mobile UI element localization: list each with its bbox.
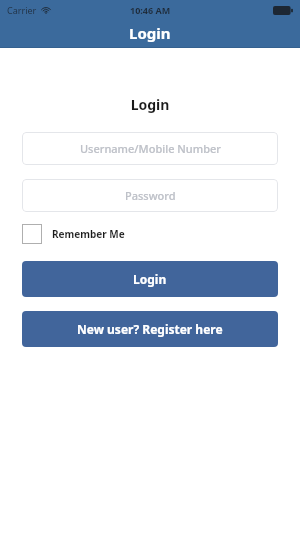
button[interactable]: Remember Me checkbox (22, 220, 125, 248)
staticText: Login (0, 95, 300, 114)
staticText: New user? Register here (77, 321, 223, 337)
staticText: Remember Me (52, 227, 125, 241)
other: Remember Me checkbox (22, 224, 42, 244)
staticText: Carrier (7, 4, 37, 16)
staticText: 10:46 AM (130, 4, 171, 16)
button[interactable]: Password (22, 179, 278, 212)
staticText: Username/Mobile Number (80, 141, 221, 156)
staticText: Password (125, 188, 176, 203)
button[interactable]: Login (22, 261, 278, 297)
staticText: Login (133, 271, 167, 287)
staticText: Login (129, 23, 171, 43)
button[interactable]: New user? Register here (22, 311, 278, 347)
button[interactable]: Username/Mobile Number (22, 132, 278, 165)
